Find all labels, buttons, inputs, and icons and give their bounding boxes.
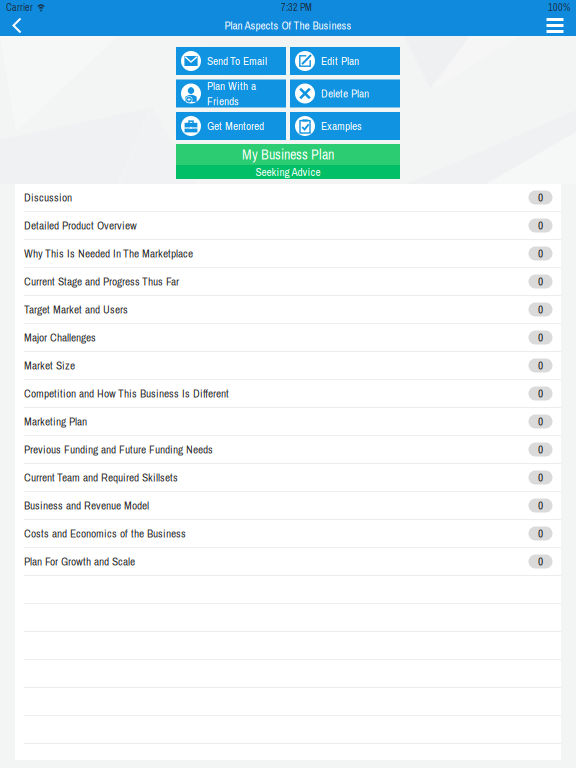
- staticText: Delete Plan: [321, 86, 369, 101]
- staticText: Seeking Advice: [255, 164, 320, 180]
- staticText: 0: [538, 274, 543, 289]
- staticText: 0: [538, 330, 543, 345]
- button[interactable]: Current Stage and Progress Thus Far: [15, 268, 561, 296]
- button[interactable]: Back: [6, 15, 36, 36]
- staticText: Detailed Product Overview: [24, 218, 137, 233]
- staticText: 0: [538, 218, 543, 233]
- button[interactable]: My Business Plan: [176, 144, 400, 179]
- button[interactable]: Market Size: [15, 352, 561, 380]
- button[interactable]: Competition and How This Business Is Dif…: [15, 380, 561, 408]
- button[interactable]: [15, 688, 561, 716]
- staticText: 0: [538, 190, 543, 205]
- button[interactable]: Marketing Plan: [15, 408, 561, 436]
- staticText: 0: [538, 554, 543, 569]
- button[interactable]: Menu: [540, 15, 570, 36]
- staticText: Why This Is Needed In The Marketplace: [24, 246, 193, 261]
- staticText: Major Challenges: [24, 330, 96, 345]
- staticText: Competition and How This Business Is Dif…: [24, 386, 229, 401]
- button[interactable]: Delete Plan: [290, 79, 400, 107]
- button[interactable]: Examples: [290, 112, 400, 140]
- button[interactable]: [15, 604, 561, 632]
- staticText: 0: [538, 386, 543, 401]
- staticText: 0: [538, 302, 543, 317]
- button[interactable]: [15, 576, 561, 604]
- button[interactable]: Costs and Economics of the Business: [15, 520, 561, 548]
- button[interactable]: Detailed Product Overview: [15, 212, 561, 240]
- staticText: 7:32 PM: [281, 1, 312, 14]
- staticText: 0: [538, 526, 543, 541]
- button[interactable]: Business and Revenue Model: [15, 492, 561, 520]
- staticText: Get Mentored: [207, 118, 264, 134]
- staticText: 100%: [548, 1, 570, 14]
- staticText: 0: [538, 442, 543, 457]
- staticText: Examples: [321, 118, 362, 134]
- staticText: Costs and Economics of the Business: [24, 526, 186, 541]
- staticText: Marketing Plan: [24, 414, 87, 429]
- staticText: Carrier: [6, 1, 33, 14]
- staticText: 0: [538, 414, 543, 429]
- staticText: Current Team and Required Skillsets: [24, 470, 178, 485]
- staticText: Plan For Growth and Scale: [24, 554, 135, 569]
- button[interactable]: Edit Plan: [290, 47, 400, 75]
- staticText: 0: [538, 358, 543, 373]
- button[interactable]: Send To Email: [176, 47, 286, 75]
- staticText: My Business Plan: [242, 145, 334, 164]
- button[interactable]: Plan With a Friends: [176, 79, 286, 107]
- button[interactable]: Discussion: [15, 184, 561, 212]
- button[interactable]: [15, 660, 561, 688]
- staticText: Previous Funding and Future Funding Need…: [24, 442, 213, 457]
- button[interactable]: Previous Funding and Future Funding Need…: [15, 436, 561, 464]
- staticText: Target Market and Users: [24, 302, 128, 317]
- button[interactable]: [15, 716, 561, 744]
- button[interactable]: Target Market and Users: [15, 296, 561, 324]
- staticText: 0: [538, 246, 543, 261]
- staticText: 0: [538, 470, 543, 485]
- button[interactable]: Get Mentored: [176, 112, 286, 140]
- staticText: Market Size: [24, 358, 75, 373]
- staticText: Current Stage and Progress Thus Far: [24, 274, 179, 289]
- staticText: Edit Plan: [321, 53, 359, 69]
- button[interactable]: Why This Is Needed In The Marketplace: [15, 240, 561, 268]
- staticText: 0: [538, 498, 543, 513]
- staticText: Send To Email: [207, 53, 267, 69]
- button[interactable]: Major Challenges: [15, 324, 561, 352]
- button[interactable]: Current Team and Required Skillsets: [15, 464, 561, 492]
- staticText: Plan With a Friends: [207, 78, 256, 109]
- staticText: Business and Revenue Model: [24, 498, 149, 513]
- button[interactable]: [15, 632, 561, 660]
- button[interactable]: Plan For Growth and Scale: [15, 548, 561, 576]
- staticText: Discussion: [24, 190, 72, 205]
- staticText: Plan Aspects Of The Business: [224, 18, 351, 33]
